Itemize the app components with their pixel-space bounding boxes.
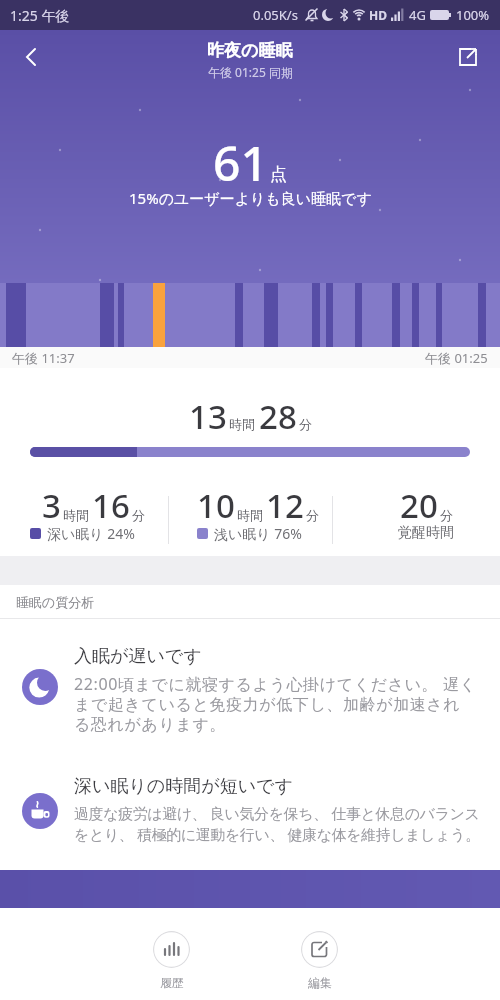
staticText: 浅い眠り 76% <box>214 524 302 543</box>
staticText: 13 <box>189 394 227 439</box>
button[interactable]: 入眠が遅いです <box>22 645 482 735</box>
staticText: 午後 01:25 同期 <box>208 64 293 80</box>
staticText: 時間 <box>229 416 255 432</box>
staticText: 時間 <box>63 507 89 523</box>
staticText: 時間 <box>237 507 263 523</box>
staticText: 点 <box>270 164 287 185</box>
staticText: 3 <box>42 483 61 528</box>
staticText: 過度な疲労は避け、 良い気分を保ち、 仕事と休息のバランス をとり、 積極的に運… <box>74 803 480 844</box>
staticText: 10 <box>197 483 235 528</box>
staticText: 覚醒時間 <box>398 524 454 542</box>
staticText: 100% <box>456 6 490 24</box>
button[interactable]: 履歴 <box>153 931 190 990</box>
staticText: 分 <box>306 507 319 523</box>
button[interactable] <box>452 41 484 73</box>
staticText: 4G <box>409 6 426 24</box>
button[interactable]: 編集 <box>301 931 338 990</box>
staticText: 睡眠の質分析 <box>16 594 95 610</box>
staticText: 22:00頃までに就寝するよう心掛けてください。 遅く まで起きていると免疫力が… <box>74 673 477 735</box>
staticText: 深い眠りの時間が短いです <box>74 775 293 798</box>
staticText: 午後 01:25 <box>425 349 488 367</box>
staticText: 深い眠り 24% <box>47 524 135 543</box>
staticText: 15%のユーザーよりも良い睡眠です <box>129 188 372 208</box>
staticText: 分 <box>299 416 312 432</box>
staticText: 分 <box>132 507 145 523</box>
staticText: 20 <box>400 483 438 528</box>
staticText: 12 <box>266 483 304 528</box>
staticText: 1:25 午後 <box>10 6 70 25</box>
button[interactable]: 深い眠りの時間が短いです <box>22 775 482 844</box>
staticText: HD <box>369 7 387 23</box>
staticText: 分 <box>440 507 453 523</box>
staticText: 昨夜の睡眠 <box>207 40 293 61</box>
staticText: 編集 <box>308 975 332 990</box>
staticText: 16 <box>92 483 130 528</box>
staticText: 0.05K/s <box>253 6 298 24</box>
staticText: 61 <box>213 130 268 195</box>
staticText: 入眠が遅いです <box>74 645 202 668</box>
button[interactable] <box>16 41 48 73</box>
staticText: 28 <box>259 394 297 439</box>
staticText: 午後 11:37 <box>12 349 75 367</box>
staticText: 履歴 <box>160 975 184 990</box>
